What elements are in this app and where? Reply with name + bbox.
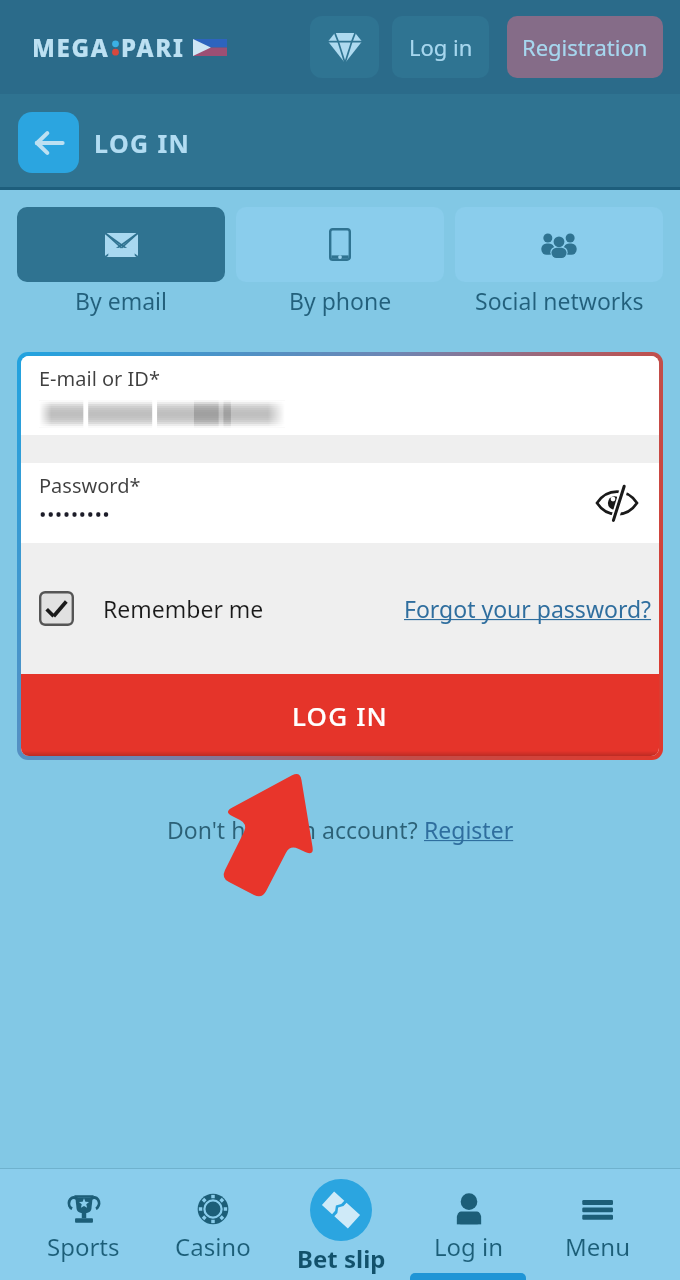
button[interactable]: By phone (236, 207, 444, 316)
button[interactable]: Menu (533, 1168, 661, 1263)
button[interactable]: LOG IN (21, 674, 659, 756)
button[interactable]: Forgot your password? (404, 593, 652, 624)
button[interactable]: Remember me (39, 591, 264, 626)
button[interactable]: Log in (405, 1168, 533, 1263)
staticText: Log in (434, 1230, 504, 1263)
button[interactable]: Register (424, 814, 514, 845)
button[interactable]: Social networks (455, 207, 663, 316)
button[interactable]: Casino (148, 1168, 277, 1263)
button[interactable]: Show password (593, 479, 641, 527)
staticText: LOG IN (94, 126, 191, 160)
staticText: Sports (47, 1230, 120, 1263)
button[interactable]: Registration (507, 16, 663, 78)
staticText: Log in (409, 32, 473, 62)
staticText: By phone (289, 285, 392, 316)
button[interactable]: Bet slip (277, 1168, 405, 1275)
staticText: Menu (565, 1230, 630, 1263)
button[interactable]: Bonuses (310, 16, 379, 78)
button[interactable]: Sports (19, 1168, 148, 1263)
staticText: Casino (175, 1230, 251, 1263)
staticText: Password* (39, 472, 141, 499)
staticText: Don't have an account? (167, 814, 424, 845)
staticText: MEGA (32, 31, 110, 64)
button[interactable]: By email (17, 207, 225, 316)
button[interactable]: Log in (392, 16, 489, 78)
staticText: ••••••••• (39, 501, 111, 528)
staticText: Registration (522, 32, 648, 62)
staticText: Remember me (103, 593, 264, 624)
staticText: PARI (121, 31, 185, 64)
staticText: LOG IN (292, 698, 388, 733)
staticText: E-mail or ID* (39, 365, 160, 392)
staticText: Bet slip (297, 1242, 386, 1275)
staticText: By email (75, 285, 167, 316)
staticText: Social networks (475, 285, 644, 316)
button[interactable]: Back (18, 112, 79, 173)
